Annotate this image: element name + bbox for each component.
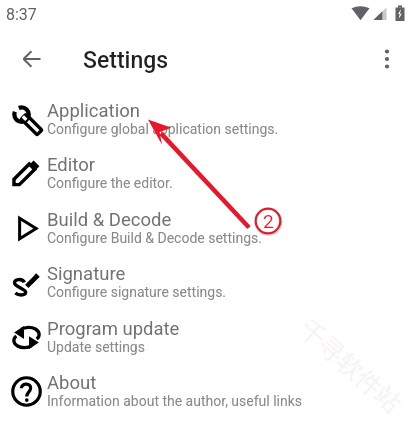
button[interactable]: Program update	[0, 315, 412, 369]
staticText: Configure global application settings.	[47, 121, 279, 137]
staticText: Configure the editor.	[47, 175, 173, 191]
staticText: Information about the author, useful lin…	[47, 393, 303, 409]
button[interactable]: Build & Decode	[0, 206, 412, 260]
staticText: Program update	[47, 318, 180, 340]
staticText: 2	[263, 210, 274, 232]
staticText: Configure signature settings.	[47, 284, 227, 300]
button[interactable]: Back	[8, 35, 56, 83]
button[interactable]: More options	[364, 36, 410, 82]
staticText: Update settings	[47, 339, 145, 355]
button[interactable]: Editor	[0, 151, 412, 205]
staticText: Settings	[83, 47, 169, 74]
staticText: Application	[47, 100, 140, 122]
staticText: Editor	[47, 154, 95, 176]
staticText: Build & Decode	[47, 209, 172, 231]
staticText: Configure Build & Decode settings.	[47, 230, 262, 246]
staticText: 千寻软件站	[293, 314, 408, 419]
button[interactable]: About	[0, 369, 412, 423]
staticText: Signature	[47, 263, 126, 285]
button[interactable]: Application	[0, 97, 412, 151]
staticText: 8:37	[6, 5, 37, 24]
button[interactable]: Signature	[0, 260, 412, 314]
staticText: About	[47, 372, 97, 394]
